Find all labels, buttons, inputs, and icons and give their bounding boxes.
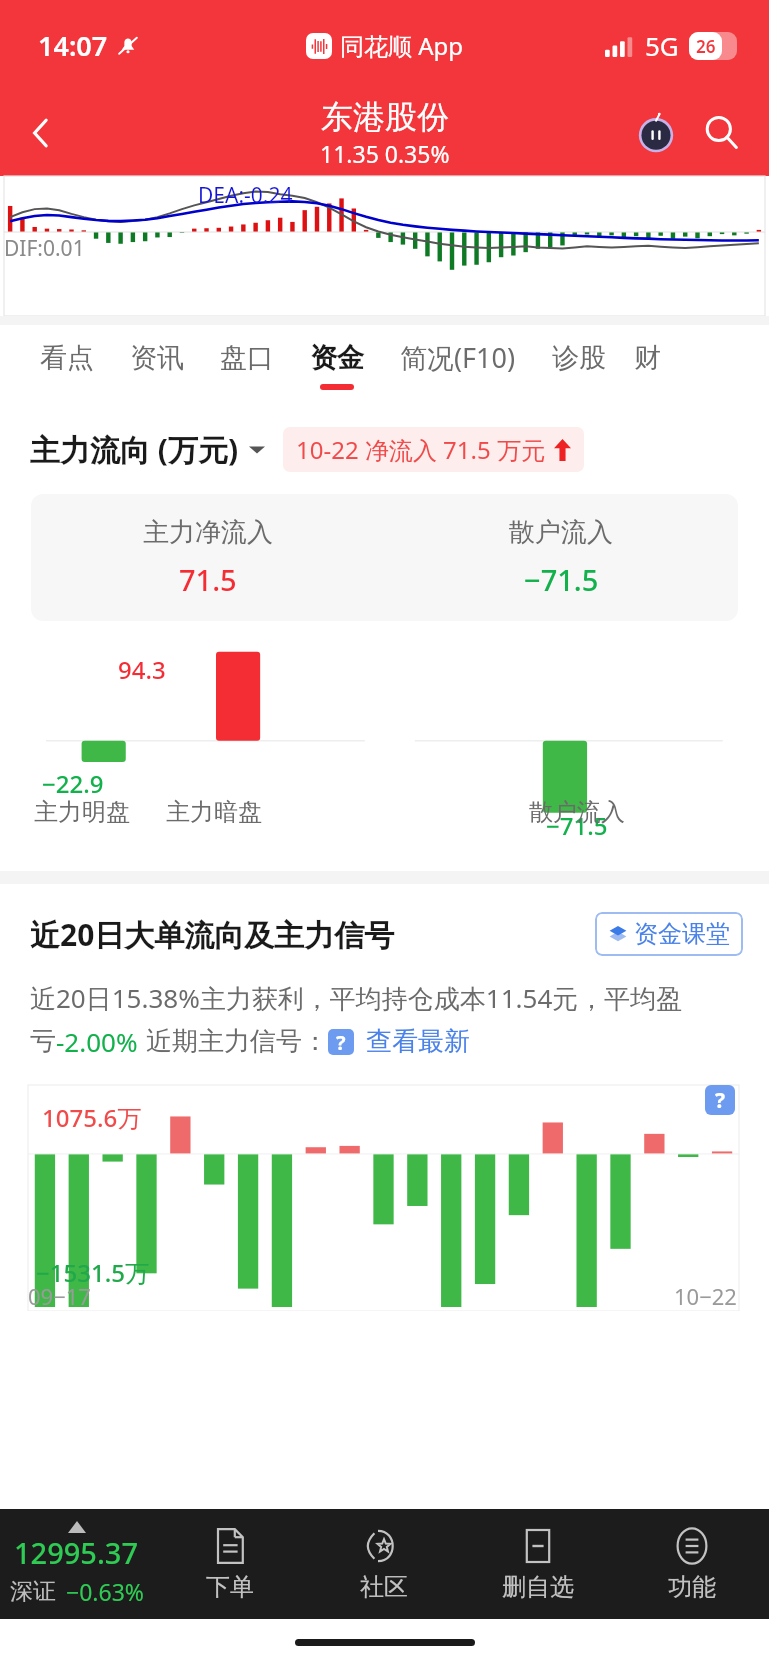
staticText: 东港股份 [321,97,449,137]
button[interactable]: 资金课堂 [595,912,743,956]
staticText: 社区 [360,1572,408,1602]
staticText: 深证 [10,1577,56,1606]
staticText: 10−22 [674,1281,737,1311]
button[interactable]: 资讯 [112,325,202,405]
staticText: 近期主力信号： [146,1025,328,1058]
staticText: 1075.6万 [42,1101,142,1134]
button[interactable]: 主力流向 (万元) [30,429,265,470]
staticText: 同花顺 App [340,29,464,62]
staticText: 26 [696,35,716,58]
staticText: 财 [634,341,661,375]
button[interactable]: AI assistant [627,104,685,162]
staticText: 主力净流入 [143,516,273,549]
staticText: 资金 [310,341,364,375]
staticText: 诊股 [552,341,606,375]
staticText: −22.9 [42,767,104,800]
button[interactable]: 社区 [307,1509,461,1619]
staticText: DIF:0.01 [4,234,85,263]
staticText: 下单 [206,1572,254,1602]
button[interactable]: Back [12,104,70,162]
button[interactable]: 下单 [153,1509,307,1619]
staticText: ? [715,1086,726,1115]
button[interactable]: 诊股 [534,325,624,405]
button[interactable]: 功能 [615,1509,769,1619]
staticText: −71.5 [524,560,599,599]
staticText: 资讯 [130,341,184,375]
button[interactable]: 10-22 净流入 71.5 万元 [283,427,584,472]
button[interactable]: Chart help [705,1085,735,1115]
button[interactable]: Search [693,104,751,162]
staticText: 删自选 [502,1572,574,1602]
staticText: 查看最新 [366,1025,470,1058]
button[interactable]: 简况(F10) [382,325,534,405]
staticText: -2.00% [56,1024,138,1059]
staticText: 主力流向 (万元) [30,429,239,470]
button[interactable]: 12995.37 [0,1509,153,1619]
button[interactable]: 资金 [292,325,382,405]
staticText: −71.5 [546,809,608,842]
staticText: 94.3 [118,653,166,686]
staticText: 散户流入 [529,797,625,827]
staticText: 散户流入 [509,516,613,549]
staticText: 11.35 0.35% [320,138,450,169]
staticText: 09−17 [28,1281,91,1311]
staticText: 亏 [30,1025,56,1058]
staticText: 资金课堂 [634,919,730,949]
staticText: 看点 [40,341,94,375]
staticText: 12995.37 [14,1533,139,1572]
staticText: 5G [645,28,679,63]
staticText: 近20日大单流向及主力信号 [30,914,395,955]
button[interactable]: 盘口 [202,325,292,405]
button[interactable]: 删自选 [461,1509,615,1619]
staticText: ? [336,1029,346,1055]
staticText: −1531.5万 [36,1256,149,1289]
button[interactable]: 看点 [22,325,112,405]
staticText: 近20日15.38%主力获利，平均持仓成本11.54元，平均盈 [30,980,683,1016]
button[interactable]: Help [328,1029,354,1055]
staticText: DEA:-0.24 [198,181,293,210]
staticText: 71.5 [179,560,237,599]
staticText: 简况(F10) [400,339,516,376]
staticText: 14:07 [38,27,108,64]
staticText: 盘口 [220,341,274,375]
staticText: 主力暗盘 [166,797,262,827]
button[interactable]: 财 [624,325,670,405]
staticText: −0.63% [66,1576,144,1607]
staticText: 10-22 净流入 71.5 万元 [296,433,545,466]
staticText: 主力明盘 [34,797,130,827]
button[interactable]: 查看最新 [366,1025,470,1058]
staticText: 功能 [668,1572,716,1602]
